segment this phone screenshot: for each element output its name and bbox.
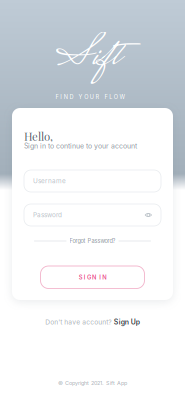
staticText: SIGN IN [79,274,106,281]
staticText: Sign Up [114,318,140,326]
staticText: Hello, [24,128,53,143]
staticText: © Copyright 2021. Sift App [58,380,127,386]
staticText: Don't have account? [45,318,111,326]
staticText: Username [33,177,66,185]
button[interactable]: SIGN IN [40,266,144,288]
staticText: Sign in to continue to your account [24,142,137,150]
staticText: Sift [56,24,119,91]
staticText: Forgot Password? [69,238,115,244]
button[interactable]: Forgot Password? [34,236,151,246]
staticText: FIND YOUR FLOW [56,94,125,100]
button[interactable]: Don't have account? [0,315,185,329]
staticText: Password [33,211,62,219]
